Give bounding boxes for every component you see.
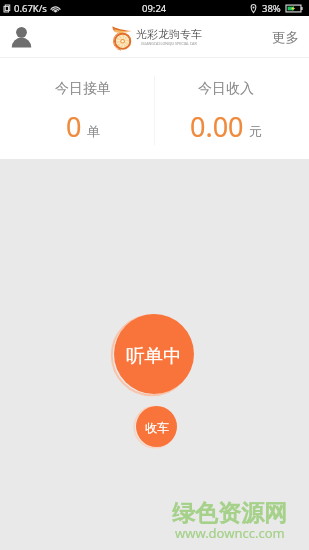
staticText: 元: [249, 123, 262, 139]
button[interactable]: Profile: [10, 26, 33, 49]
staticText: 收车: [145, 420, 169, 435]
button[interactable]: 收车: [136, 406, 177, 447]
staticText: www.downcc.com: [175, 524, 285, 542]
staticText: 今日接单: [55, 80, 111, 98]
staticText: 09:24: [142, 2, 167, 15]
staticText: 0: [66, 108, 82, 145]
staticText: GUANGCAI LONGJU SPECIAL CAR: [141, 41, 197, 46]
staticText: 0.00: [190, 108, 244, 145]
button[interactable]: 听单中: [114, 314, 194, 394]
staticText: 单: [87, 123, 100, 139]
staticText: 听单中: [126, 344, 182, 367]
staticText: 光彩龙驹专车: [136, 27, 202, 41]
button[interactable]: 更多: [272, 29, 299, 46]
staticText: 0.67K/s: [14, 2, 47, 15]
staticText: 今日收入: [198, 80, 254, 98]
staticText: 绿色资源网: [172, 499, 287, 528]
staticText: 38%: [262, 2, 281, 15]
